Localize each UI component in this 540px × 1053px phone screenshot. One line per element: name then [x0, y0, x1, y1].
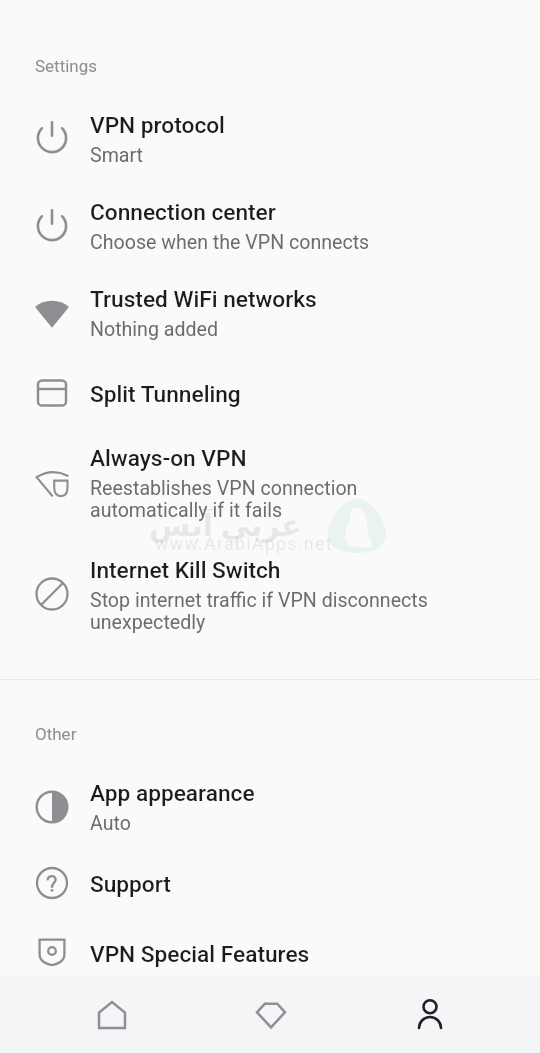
staticText: Settings [35, 56, 98, 76]
staticText: VPN Special Features [90, 941, 310, 967]
button[interactable]: Split Tunneling [0, 353, 540, 430]
button[interactable]: VPN protocol [0, 94, 540, 180]
staticText: Always-on VPN [90, 445, 247, 471]
button[interactable]: Connection center [0, 180, 540, 269]
staticText: Connection center [90, 199, 276, 225]
staticText: Internet Kill Switch [90, 557, 281, 583]
staticText: Trusted WiFi networks [90, 286, 317, 312]
staticText: Smart [90, 145, 144, 167]
button[interactable]: Plans [191, 976, 350, 1053]
staticText: www.ArabiApps.net [155, 533, 333, 554]
staticText: App appearance [90, 780, 255, 806]
button[interactable]: Trusted WiFi networks [0, 269, 540, 353]
staticText: Nothing added [90, 319, 219, 341]
staticText: Split Tunneling [90, 381, 241, 407]
button[interactable]: Always-on VPN [0, 430, 540, 533]
staticText: Choose when the VPN connects [90, 232, 370, 254]
button[interactable]: VPN Special Features [0, 913, 540, 991]
staticText: عربي آبس [149, 504, 302, 545]
staticText: Stop internet traffic if VPN disconnects… [90, 590, 428, 634]
staticText: Other [35, 724, 77, 744]
button[interactable]: Support [0, 850, 540, 913]
button[interactable]: App appearance [0, 761, 540, 850]
staticText: Auto [90, 813, 131, 835]
staticText: Reestablishes VPN connection automatical… [90, 478, 358, 522]
button[interactable]: Home [33, 976, 191, 1053]
button[interactable]: Profile [350, 976, 509, 1053]
button[interactable]: Internet Kill Switch [0, 533, 540, 653]
staticText: VPN protocol [90, 112, 225, 138]
staticText: Support [90, 871, 171, 897]
